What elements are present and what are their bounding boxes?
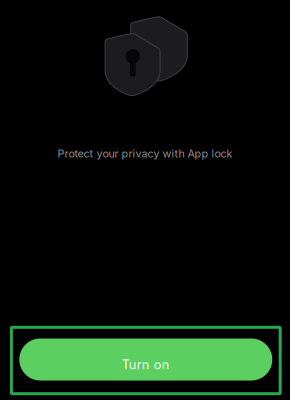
staticText: Protect your privacy with App lock (57, 147, 232, 160)
button[interactable]: Turn on (11, 327, 280, 394)
staticText: Turn on (122, 357, 170, 372)
